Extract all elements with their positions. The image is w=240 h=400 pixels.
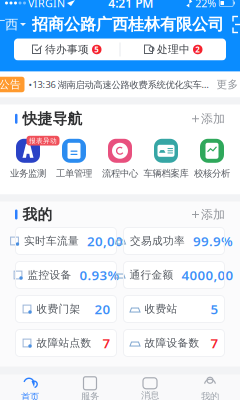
staticText: 我的 [22,205,52,223]
staticText: 添加 [201,111,225,126]
button[interactable]: 收费门架 [15,295,116,322]
staticText: 公告 [0,78,21,91]
staticText: 故障设备数 [144,336,199,349]
staticText: 收费门架 [36,302,80,315]
staticText: 5 [210,300,218,318]
staticText: VIRGIN [28,0,65,10]
button[interactable]: 消息 [120,374,180,400]
staticText: 处理中 [157,43,190,56]
button[interactable]: 实时车流量 [15,227,116,254]
button[interactable]: Scan [232,15,240,33]
staticText: 交易成功率 [130,234,185,247]
staticText: 校核分析 [194,168,230,179]
staticText: 实时车流量 [24,234,79,247]
button[interactable]: 流程中心 [97,139,143,179]
button[interactable]: 工单管理 [51,139,97,179]
button[interactable]: 公告 [0,71,240,97]
staticText: 20,00 [87,232,123,250]
button[interactable]: 报表异动 [5,139,51,179]
staticText: 4:21 PM [108,0,153,11]
staticText: 7 [210,334,218,352]
staticText: 监控设备 [27,268,71,281]
staticText: 0.93% [79,266,119,284]
staticText: 通行金额 [129,268,173,281]
staticText: 待办事项 [45,43,89,56]
staticText: 22% [195,0,216,10]
staticText: 更多 [216,78,238,91]
staticText: 4000,00 [181,266,233,284]
button[interactable]: 广西 [0,16,28,33]
staticText: 车辆档案库 [143,168,188,179]
staticText: 业务监测 [10,168,46,179]
button[interactable]: 交易成功率 [123,227,224,254]
staticText: 服务 [81,391,99,400]
staticText: 5 [94,44,99,55]
staticText: 工单管理 [56,168,92,179]
button[interactable]: 监控设备 [15,261,116,288]
staticText: 收费站 [144,302,177,315]
staticText: •13:36 湖南启动高速公路收费系统优化实车… [28,78,208,91]
button[interactable]: 收费站 [123,295,224,322]
staticText: 消息 [141,390,159,400]
staticText: 首页 [21,391,39,400]
button[interactable]: 故障站点数 [15,329,116,356]
button[interactable]: 校核分析 [189,139,235,179]
staticText: 99.9% [193,232,233,250]
staticText: 招商公路广西桂林有限公司 [32,15,224,34]
button[interactable]: 故障设备数 [123,329,224,356]
button[interactable]: 处理中 [120,38,226,60]
staticText: 添加 [201,207,225,222]
button[interactable]: 我的 [180,374,240,400]
staticText: 故障站点数 [36,336,91,349]
button[interactable]: 待办事项 [14,38,119,60]
staticText: 2 [195,44,200,55]
button[interactable]: 添加 [192,207,225,222]
button[interactable]: 服务 [60,374,120,400]
button[interactable]: 首页 [0,374,60,400]
staticText: 20 [94,300,110,318]
button[interactable]: 通行金额 [123,261,224,288]
staticText: 流程中心 [102,168,138,179]
button[interactable]: 车辆档案库 [143,139,189,179]
button[interactable]: 添加 [192,111,225,126]
staticText: 快捷导航 [22,110,82,128]
staticText: 我的 [201,391,219,400]
staticText: 7 [102,334,110,352]
staticText: 报表异动 [29,137,57,145]
staticText: 广西 [0,16,18,33]
